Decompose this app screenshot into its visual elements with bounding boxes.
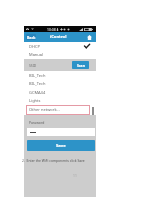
button[interactable]: Scan xyxy=(72,61,89,69)
button[interactable]: DHCP xyxy=(24,42,96,50)
button[interactable]: GCMA44 xyxy=(24,88,96,96)
staticText: GCMA44 xyxy=(29,90,46,95)
staticText: Back xyxy=(27,35,36,40)
staticText: Lights xyxy=(29,98,41,103)
button[interactable]: Lights xyxy=(24,96,96,104)
staticText: iControl xyxy=(50,34,67,40)
staticText: Password xyxy=(29,120,45,125)
staticText: Other network... xyxy=(29,107,60,112)
staticText: 10:08 xyxy=(47,27,56,32)
button[interactable]: Back xyxy=(26,34,36,40)
staticText: BIL_Tech xyxy=(29,73,46,78)
staticText: Manual xyxy=(29,52,44,57)
button[interactable]: Other network... xyxy=(24,105,96,113)
staticText: BIL_Tech xyxy=(29,81,46,86)
staticText: Save xyxy=(56,143,66,149)
staticText: Scan xyxy=(77,63,85,68)
button[interactable]: BIL_Tech xyxy=(24,71,96,79)
button[interactable]: Manual xyxy=(24,50,96,58)
button[interactable]: BIL_Tech xyxy=(24,79,96,87)
button[interactable] xyxy=(27,128,95,136)
staticText: DHCP xyxy=(29,44,40,49)
staticText: 11 xyxy=(73,173,77,177)
staticText: 2. Enter the WiFi components click Save xyxy=(22,158,85,163)
button[interactable]: Home xyxy=(86,34,93,41)
button[interactable]: Save xyxy=(27,140,95,151)
staticText: SSID xyxy=(29,63,37,68)
